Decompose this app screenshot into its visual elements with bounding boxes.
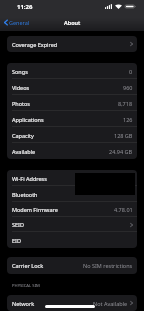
staticText: General	[9, 19, 30, 26]
button[interactable]: Carrier Lock	[7, 257, 137, 274]
staticText: Applications	[12, 116, 44, 123]
staticText: 0	[129, 68, 133, 75]
staticText: 11:26	[17, 3, 33, 11]
staticText: PHYSICAL SIM	[12, 283, 40, 289]
button[interactable]: Modem Firmware	[7, 202, 137, 217]
staticText: 8,718	[118, 100, 133, 107]
button[interactable]: Capacity	[7, 127, 137, 143]
button[interactable]: General	[3, 17, 31, 28]
staticText: 126	[123, 116, 133, 123]
staticText: Bluetooth	[12, 191, 38, 198]
staticText: SEID	[12, 221, 24, 228]
staticText: 24.94 GB	[109, 148, 133, 155]
staticText: Modem Firmware	[12, 206, 58, 213]
staticText: Carrier Lock	[12, 262, 44, 269]
button[interactable]: Available	[7, 143, 137, 159]
staticText: Videos	[12, 84, 30, 91]
staticText: Coverage Expired	[12, 41, 58, 48]
staticText: Available	[12, 148, 36, 155]
staticText: 960	[123, 84, 133, 91]
button[interactable]: EID	[7, 232, 137, 248]
button[interactable]: Videos	[7, 79, 137, 95]
staticText: Capacity	[12, 132, 34, 139]
button[interactable]: Network	[7, 295, 137, 311]
staticText: Songs	[12, 68, 28, 75]
staticText: 4.78.01	[114, 206, 133, 213]
staticText: EID	[12, 237, 21, 244]
staticText: Not Available	[93, 300, 128, 307]
staticText: 128 GB	[114, 132, 133, 139]
staticText: Photos	[12, 100, 31, 107]
staticText: Wi-Fi Address	[12, 175, 47, 182]
staticText: Network	[12, 300, 35, 307]
button[interactable]: SEID	[7, 217, 137, 232]
button[interactable]: Songs	[7, 63, 137, 79]
button[interactable]: Bluetooth	[7, 186, 137, 202]
staticText: About	[64, 19, 81, 26]
button[interactable]: Wi-Fi Address	[7, 170, 137, 186]
button[interactable]: Photos	[7, 95, 137, 111]
button[interactable]: Coverage Expired	[7, 36, 137, 52]
button[interactable]: Applications	[7, 111, 137, 127]
staticText: No SIM restrictions	[83, 262, 133, 269]
